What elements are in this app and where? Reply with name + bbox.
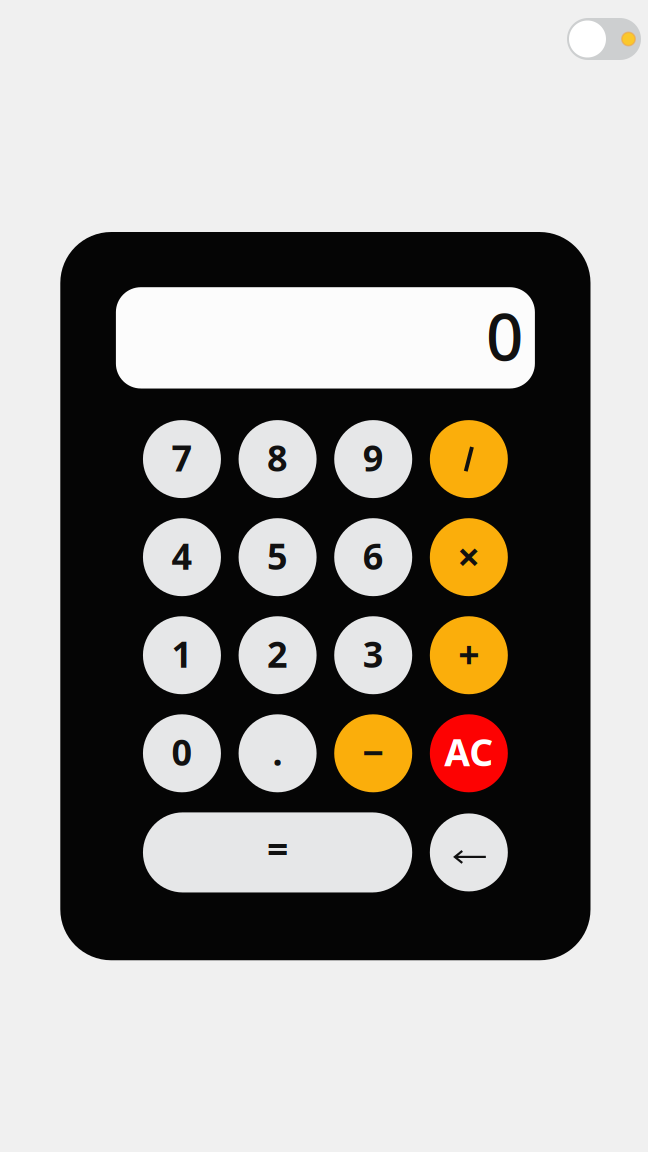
staticText: 8: [267, 434, 288, 481]
staticText: 1: [171, 630, 192, 678]
staticText: 0: [486, 292, 523, 379]
staticText: 7: [171, 434, 192, 481]
button[interactable]: Toggle appearance: [567, 18, 641, 60]
button[interactable]: 5: [239, 518, 317, 596]
button[interactable]: 1: [143, 616, 221, 694]
button[interactable]: 4: [143, 518, 221, 596]
staticText: +: [458, 629, 479, 679]
button[interactable]: 0: [143, 714, 221, 792]
staticText: 5: [267, 532, 288, 580]
button[interactable]: −: [334, 714, 412, 792]
staticText: ×: [457, 529, 480, 582]
button[interactable]: Backspace: [430, 813, 508, 891]
button[interactable]: 2: [239, 616, 317, 694]
button[interactable]: =: [143, 812, 412, 892]
staticText: 4: [171, 532, 192, 580]
button[interactable]: +: [430, 616, 508, 694]
staticText: 6: [363, 532, 384, 580]
staticText: 0: [171, 728, 192, 776]
staticText: AC: [444, 727, 493, 777]
staticText: =: [267, 824, 288, 873]
button[interactable]: ×: [430, 518, 508, 596]
button[interactable]: .: [239, 714, 317, 792]
staticText: −: [362, 727, 384, 777]
staticText: 9: [363, 434, 384, 481]
staticText: .: [273, 728, 283, 776]
button[interactable]: 9: [334, 420, 412, 498]
button[interactable]: AC: [430, 714, 508, 792]
button[interactable]: 6: [334, 518, 412, 596]
staticText: 2: [267, 630, 288, 678]
button[interactable]: 3: [334, 616, 412, 694]
staticText: 3: [363, 630, 384, 678]
button[interactable]: 7: [143, 420, 221, 498]
button[interactable]: 8: [239, 420, 317, 498]
button[interactable]: Divide: [430, 420, 508, 498]
